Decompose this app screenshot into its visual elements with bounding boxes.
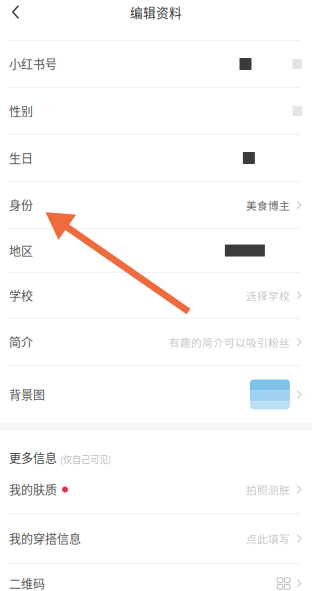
staticText: 身份	[9, 196, 33, 214]
staticText: 美食博主	[246, 197, 290, 213]
button[interactable]: 我的肤质	[0, 466, 312, 513]
staticText: 生日	[9, 149, 33, 167]
staticText: 编辑资料	[130, 3, 182, 21]
button[interactable]: 我的穿搭信息	[0, 514, 312, 563]
staticText: 我的肤质	[9, 481, 57, 498]
button[interactable]: 地区	[0, 229, 312, 272]
button[interactable]: 生日	[0, 135, 312, 181]
button[interactable]: 二维码	[0, 564, 312, 591]
staticText: 我的穿搭信息	[9, 530, 81, 547]
staticText: 地区	[9, 242, 33, 259]
staticText: 拍照测肤	[246, 482, 290, 497]
staticText: 二维码	[9, 575, 45, 591]
staticText: 更多信息	[9, 449, 57, 466]
staticText: 点此填写	[246, 531, 290, 546]
button[interactable]: 学校	[0, 273, 312, 318]
staticText: 背景图	[9, 386, 45, 403]
staticText: 简介	[9, 333, 33, 351]
button[interactable]: 背景图	[0, 366, 312, 423]
button[interactable]: 性别	[0, 88, 312, 134]
staticText: 有趣的简介可以吸引粉丝	[169, 334, 290, 350]
button[interactable]: Back	[0, 0, 33, 24]
staticText: 小红书号	[9, 55, 57, 73]
staticText: 性别	[9, 102, 33, 120]
button[interactable]: 简介	[0, 319, 312, 365]
staticText: 选择学校	[246, 288, 290, 303]
staticText: 学校	[9, 287, 33, 304]
button[interactable]: 小红书号	[0, 41, 312, 87]
staticText: (仅自己可见)	[60, 452, 111, 466]
button[interactable]: 身份	[0, 182, 312, 228]
